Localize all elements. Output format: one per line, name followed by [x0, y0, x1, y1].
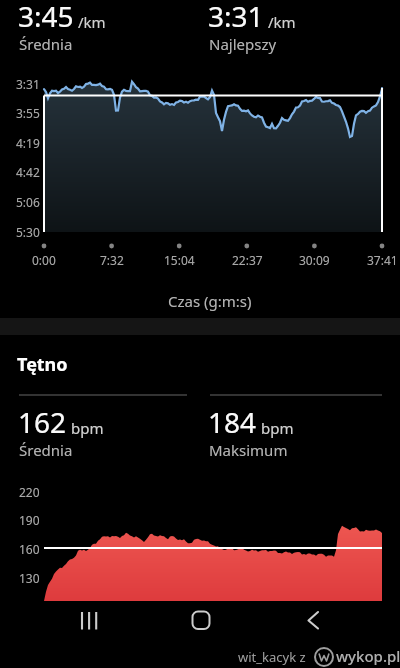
- staticText: 4:42: [16, 164, 40, 180]
- staticText: Najlepszy: [209, 34, 277, 54]
- staticText: /km: [78, 12, 106, 32]
- staticText: 3:31: [16, 76, 40, 92]
- staticText: /km: [268, 12, 296, 32]
- button[interactable]: [0, 602, 134, 644]
- staticText: Średnia: [19, 34, 73, 54]
- staticText: 130: [19, 570, 40, 586]
- staticText: 7:32: [100, 252, 124, 268]
- staticText: 4:19: [16, 135, 40, 151]
- staticText: wit_kacyk z: [238, 648, 306, 666]
- staticText: 3:31: [208, 0, 264, 35]
- staticText: 184: [208, 403, 257, 441]
- staticText: 5:06: [16, 194, 40, 210]
- staticText: Czas (g:m:s): [168, 291, 252, 311]
- button[interactable]: 3:45: [18, 0, 106, 35]
- button[interactable]: 3:31: [208, 0, 296, 35]
- button[interactable]: 162: [18, 403, 104, 441]
- button[interactable]: 184: [208, 403, 294, 441]
- staticText: bpm: [261, 418, 294, 438]
- staticText: 162: [18, 403, 67, 441]
- staticText: 3:45: [18, 0, 74, 35]
- staticText: Średnia: [19, 440, 73, 460]
- button[interactable]: [134, 602, 267, 644]
- staticText: 30:09: [299, 252, 330, 268]
- button[interactable]: [267, 602, 400, 644]
- staticText: 5:30: [16, 224, 40, 240]
- staticText: 3:55: [16, 105, 40, 121]
- staticText: 22:37: [232, 252, 263, 268]
- staticText: 37:41: [367, 252, 398, 268]
- staticText: 160: [19, 541, 40, 557]
- staticText: Tętno: [17, 352, 68, 377]
- staticText: 0:00: [32, 252, 56, 268]
- staticText: 220: [19, 484, 40, 500]
- staticText: Maksimum: [209, 440, 288, 460]
- staticText: 15:04: [164, 252, 195, 268]
- staticText: wykop.pl: [336, 646, 400, 666]
- staticText: bpm: [71, 418, 104, 438]
- staticText: 190: [19, 512, 40, 528]
